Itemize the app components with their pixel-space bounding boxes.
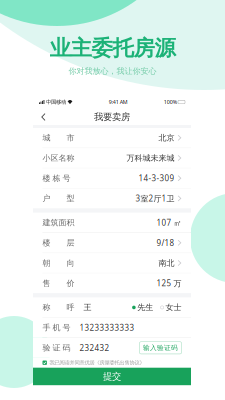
staticText: 13233333333: [79, 322, 134, 333]
staticText: 232432: [79, 342, 109, 353]
staticText: 我要卖房: [94, 111, 130, 123]
staticText: 125 万: [156, 278, 181, 288]
staticText: 验 证 码: [42, 343, 70, 353]
staticText: 万科城未来城: [126, 153, 174, 163]
button[interactable]: 女士: [153, 302, 181, 312]
staticText: 楼 层: [42, 238, 74, 248]
staticText: 称 呼: [42, 302, 74, 312]
button[interactable]: 返回: [36, 109, 51, 125]
staticText: 城 市: [42, 133, 74, 143]
button[interactable]: 户 型: [33, 189, 191, 208]
staticText: 南北: [158, 258, 174, 268]
button[interactable]: 楼 层: [33, 233, 191, 253]
staticText: 9/18: [156, 237, 174, 248]
staticText: 王: [83, 302, 91, 312]
button[interactable]: 朝 向: [33, 253, 191, 273]
staticText: 小区名称: [42, 153, 74, 163]
staticText: 女士: [165, 302, 181, 312]
staticText: 我已阅读并同意优居《房屋委托出售协议》: [49, 359, 144, 366]
button[interactable]: 售 价: [33, 273, 191, 293]
staticText: 户 型: [42, 193, 74, 203]
button[interactable]: 先生: [132, 302, 153, 312]
staticText: 14-3-309: [138, 173, 174, 183]
staticText: 提交: [103, 371, 121, 382]
button[interactable]: 城 市: [33, 128, 191, 148]
button[interactable]: 我已阅读并同意优居《房屋委托出售协议》: [33, 358, 191, 368]
staticText: 中国移动: [46, 99, 66, 105]
staticText: 建筑面积: [42, 218, 74, 227]
staticText: 售 价: [42, 278, 74, 288]
button[interactable]: 建筑面积: [33, 213, 191, 232]
staticText: 朝 向: [42, 258, 74, 268]
staticText: 楼 栋 号: [42, 173, 70, 183]
staticText: 业主委托房源: [49, 35, 175, 61]
staticText: 107 ㎡: [156, 217, 181, 228]
staticText: 100%: [164, 98, 177, 106]
staticText: 3室2厅1卫: [135, 193, 174, 204]
button[interactable]: 输入验证码: [139, 342, 181, 354]
staticText: 9:41 AM: [109, 98, 128, 106]
staticText: 北京: [158, 133, 174, 143]
button[interactable]: 楼 栋 号: [33, 168, 191, 188]
staticText: 你对我放心，我让你安心: [68, 66, 156, 76]
button[interactable]: 提交: [33, 368, 191, 385]
staticText: 输入验证码: [143, 344, 178, 352]
button[interactable]: 小区名称: [33, 148, 191, 168]
staticText: 先生: [137, 302, 153, 312]
staticText: 手 机 号: [42, 323, 70, 332]
